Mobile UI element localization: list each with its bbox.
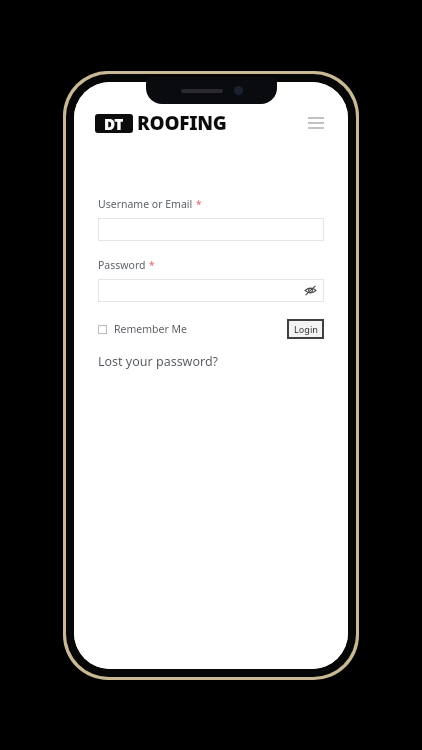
staticText: Login <box>294 323 318 335</box>
staticText: ROOFING <box>137 110 227 136</box>
staticText: Username or Email <box>98 197 193 211</box>
staticText: Remember Me <box>114 322 187 336</box>
staticText: Password <box>98 258 146 272</box>
button[interactable]: Show password <box>304 284 317 297</box>
staticText: * <box>149 258 155 272</box>
button[interactable]: Open menu <box>303 110 329 136</box>
button[interactable]: Show password <box>98 279 324 302</box>
staticText: * <box>196 197 202 211</box>
button[interactable]: Login <box>287 319 324 339</box>
button[interactable]: Lost your password? <box>98 353 219 370</box>
button[interactable] <box>98 218 324 241</box>
button[interactable]: Remember Me <box>98 318 187 340</box>
staticText: DT <box>104 114 124 133</box>
